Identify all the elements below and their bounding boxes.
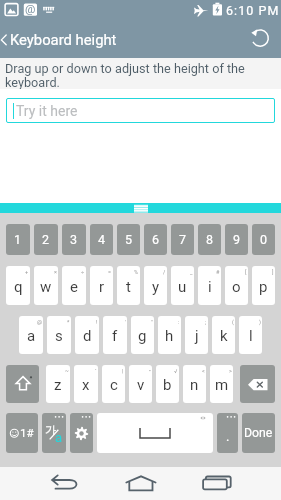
- staticText: ]: [272, 269, 274, 275]
- button[interactable]: ÷: [62, 266, 86, 305]
- staticText: x: [82, 376, 90, 394]
- staticText: g: [138, 327, 147, 345]
- staticText: r: [99, 278, 105, 296]
- button[interactable]: Backspace: [240, 365, 275, 403]
- button[interactable]: Home: [123, 467, 159, 500]
- staticText: Keyboard height: [10, 31, 117, 48]
- staticText: @: [37, 319, 42, 325]
- staticText: m: [215, 376, 229, 394]
- button[interactable]: @: [19, 316, 43, 354]
- button[interactable]: 6: [144, 224, 167, 255]
- staticText: Drag up or down to adjust the height of …: [5, 61, 245, 89]
- button[interactable]: Period: [217, 413, 238, 453]
- button[interactable]: Symbols: [6, 413, 38, 453]
- staticText: q: [14, 278, 23, 296]
- button[interactable]: 4: [90, 224, 113, 255]
- button[interactable]: <: [183, 365, 206, 403]
- button[interactable]: Shift: [6, 365, 39, 403]
- staticText: d: [83, 327, 92, 345]
- staticText: _: [190, 269, 193, 275]
- button[interactable]: Settings: [70, 413, 93, 453]
- button[interactable]: Try it here: [6, 98, 275, 123]
- staticText: s: [55, 327, 63, 345]
- staticText: Done: [244, 426, 273, 440]
- button[interactable]: _: [171, 266, 194, 305]
- staticText: ×: [54, 269, 57, 275]
- staticText: (: [232, 319, 234, 325]
- button[interactable]: 3: [62, 224, 86, 255]
- button[interactable]: 0: [252, 224, 275, 255]
- staticText: 0: [260, 232, 268, 247]
- button[interactable]: Recents: [196, 467, 232, 500]
- button[interactable]: |: [102, 365, 125, 403]
- staticText: l: [249, 327, 253, 345]
- button[interactable]: :: [158, 316, 181, 354]
- button[interactable]: ]: [252, 266, 275, 305]
- staticText: [: [245, 269, 247, 275]
- staticText: 3: [70, 232, 78, 247]
- button[interactable]: ): [239, 316, 262, 354]
- staticText: ": [151, 319, 153, 325]
- staticText: 6: [152, 232, 160, 247]
- staticText: 1: [14, 232, 22, 247]
- staticText: j: [195, 327, 199, 345]
- button[interactable]: ~: [46, 365, 70, 403]
- button[interactable]: /: [144, 266, 167, 305]
- staticText: i: [208, 278, 212, 296]
- button[interactable]: 5: [117, 224, 140, 255]
- button[interactable]: [: [225, 266, 248, 305]
- staticText: f: [112, 327, 118, 345]
- staticText: a: [55, 430, 63, 445]
- staticText: a: [27, 327, 36, 345]
- staticText: <: [202, 368, 205, 374]
- staticText: *: [67, 319, 70, 325]
- button[interactable]: Done: [242, 413, 275, 453]
- button[interactable]: Resize keyboard: [134, 203, 148, 213]
- button[interactable]: √: [156, 365, 179, 403]
- staticText: .: [226, 429, 230, 444]
- button[interactable]: *: [47, 316, 71, 354]
- staticText: o: [232, 278, 241, 296]
- staticText: 4: [98, 232, 106, 247]
- staticText: p: [259, 278, 268, 296]
- button[interactable]: Back: [46, 467, 82, 500]
- button[interactable]: Space: [97, 413, 213, 453]
- button[interactable]: =: [90, 266, 113, 305]
- button[interactable]: 9: [225, 224, 248, 255]
- button[interactable]: 7: [171, 224, 194, 255]
- button[interactable]: 2: [34, 224, 58, 255]
- button[interactable]: (: [212, 316, 235, 354]
- staticText: #: [216, 269, 220, 275]
- staticText: y: [152, 278, 160, 296]
- staticText: ;: [205, 319, 207, 325]
- button[interactable]: %: [117, 266, 140, 305]
- staticText: v: [137, 376, 145, 394]
- button[interactable]: `: [74, 365, 98, 403]
- button[interactable]: ": [131, 316, 154, 354]
- staticText: %: [134, 269, 139, 275]
- button[interactable]: ×: [34, 266, 58, 305]
- button[interactable]: Change language: [42, 413, 66, 453]
- button[interactable]: Reset: [241, 24, 281, 58]
- button[interactable]: 8: [198, 224, 221, 255]
- staticText: 8: [206, 232, 214, 247]
- button[interactable]: #: [198, 266, 221, 305]
- button[interactable]: +: [6, 266, 30, 305]
- staticText: @: [25, 2, 36, 15]
- button[interactable]: Keyboard height: [0, 24, 117, 58]
- staticText: 2: [42, 232, 50, 247]
- staticText: b: [163, 376, 172, 394]
- staticText: 5: [125, 232, 133, 247]
- button[interactable]: •: [129, 365, 152, 403]
- button[interactable]: !: [75, 316, 99, 354]
- staticText: t: [126, 278, 131, 296]
- staticText: ): [259, 319, 261, 325]
- staticText: •: [149, 368, 151, 374]
- button[interactable]: ;: [185, 316, 208, 354]
- staticText: ': [125, 319, 126, 325]
- button[interactable]: 1: [6, 224, 30, 255]
- button[interactable]: ': [103, 316, 127, 354]
- button[interactable]: >: [210, 365, 233, 403]
- staticText: 6:10 PM: [226, 3, 280, 18]
- staticText: `: [95, 368, 97, 374]
